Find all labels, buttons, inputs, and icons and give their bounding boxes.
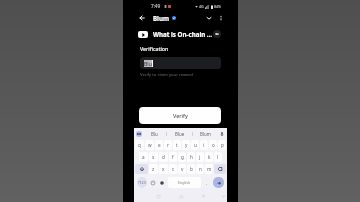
button[interactable]: s [149,152,158,162]
staticText: Verify [173,112,188,119]
staticText: n [199,166,202,172]
button[interactable]: f [169,152,177,162]
staticText: 84% [214,4,222,9]
button[interactable]: Enter [213,177,224,188]
staticText: What is On-chain ... [153,30,213,38]
staticText: y [185,142,188,148]
button[interactable]: Home [177,192,185,200]
button[interactable]: j [196,152,204,162]
button[interactable]: m [205,164,213,174]
staticText: t [176,142,178,148]
staticText: u [194,142,197,148]
button[interactable]: Emoji [149,177,156,188]
button[interactable]: h [187,152,195,162]
staticText: Blue [175,131,185,137]
button[interactable]: Blum [193,128,218,139]
button[interactable]: o [209,140,217,150]
button[interactable]: t [173,140,181,150]
button[interactable]: y [182,140,190,150]
staticText: 7:49 [151,3,161,9]
staticText: b [190,166,193,172]
staticText: i [203,142,205,148]
button[interactable]: u [191,140,199,150]
button[interactable]: Blue [167,128,192,139]
button[interactable]: Back [134,11,149,24]
staticText: z [152,166,155,172]
staticText: English [178,180,191,185]
staticText: c [172,166,175,172]
button[interactable]: Shift [135,164,148,174]
button[interactable]: l [214,152,222,162]
staticText: Blu [144,60,152,67]
button[interactable]: e [155,140,163,150]
staticText: f [172,154,174,160]
staticText: q [138,142,141,148]
staticText: r [167,142,169,148]
button[interactable]: k [205,152,213,162]
staticText: g [181,154,184,160]
button[interactable]: ?123 [137,177,147,188]
button[interactable]: Recents [154,192,162,200]
staticText: ?123 [138,180,146,185]
staticText: Verify to claim your reward [140,72,193,78]
staticText: v [181,166,184,172]
staticText: s [152,154,155,160]
staticText: Blum [153,14,170,22]
staticText: p [221,142,224,148]
staticText: d [162,154,165,160]
button[interactable]: r [164,140,172,150]
staticText: w [148,142,152,148]
staticText: e [158,142,161,148]
button[interactable]: Gboard menu [136,131,142,137]
button[interactable]: x [159,164,168,174]
staticText: l [217,154,219,160]
button[interactable]: Blu [142,128,166,139]
staticText: j [199,154,201,160]
staticText: o [212,142,215,148]
button[interactable]: . [203,177,211,188]
staticText: a [142,154,145,160]
staticText: Blum [200,131,211,137]
button[interactable]: c [169,164,177,174]
staticText: Verification [140,45,169,52]
button[interactable]: More options [215,11,227,24]
button[interactable]: q [135,140,144,150]
staticText: m [207,166,212,172]
button[interactable]: Stickers [158,177,166,188]
button[interactable]: d [159,152,168,162]
button[interactable]: b [187,164,195,174]
button[interactable]: English [168,177,201,188]
button[interactable]: Collapse [202,11,215,24]
staticText: k [208,154,211,160]
button[interactable]: p [218,140,226,150]
button[interactable]: g [178,152,186,162]
button[interactable]: Back [199,192,207,200]
button[interactable]: n [196,164,204,174]
staticText: . [206,180,208,186]
button[interactable]: Open video [213,30,221,38]
button[interactable]: Voice input [218,128,225,139]
button[interactable]: i [200,140,208,150]
staticText: h [190,154,193,160]
staticText: 4G [199,4,204,9]
button[interactable]: a [139,152,148,162]
button[interactable]: v [178,164,186,174]
button[interactable]: z [149,164,158,174]
button[interactable]: Backspace [214,164,226,174]
staticText: Blu [151,131,158,137]
button[interactable]: w [145,140,154,150]
staticText: x [162,166,165,172]
button[interactable]: Blu [140,57,221,69]
button[interactable]: Hide keyboard [219,192,227,200]
button[interactable]: Verify [139,107,221,124]
